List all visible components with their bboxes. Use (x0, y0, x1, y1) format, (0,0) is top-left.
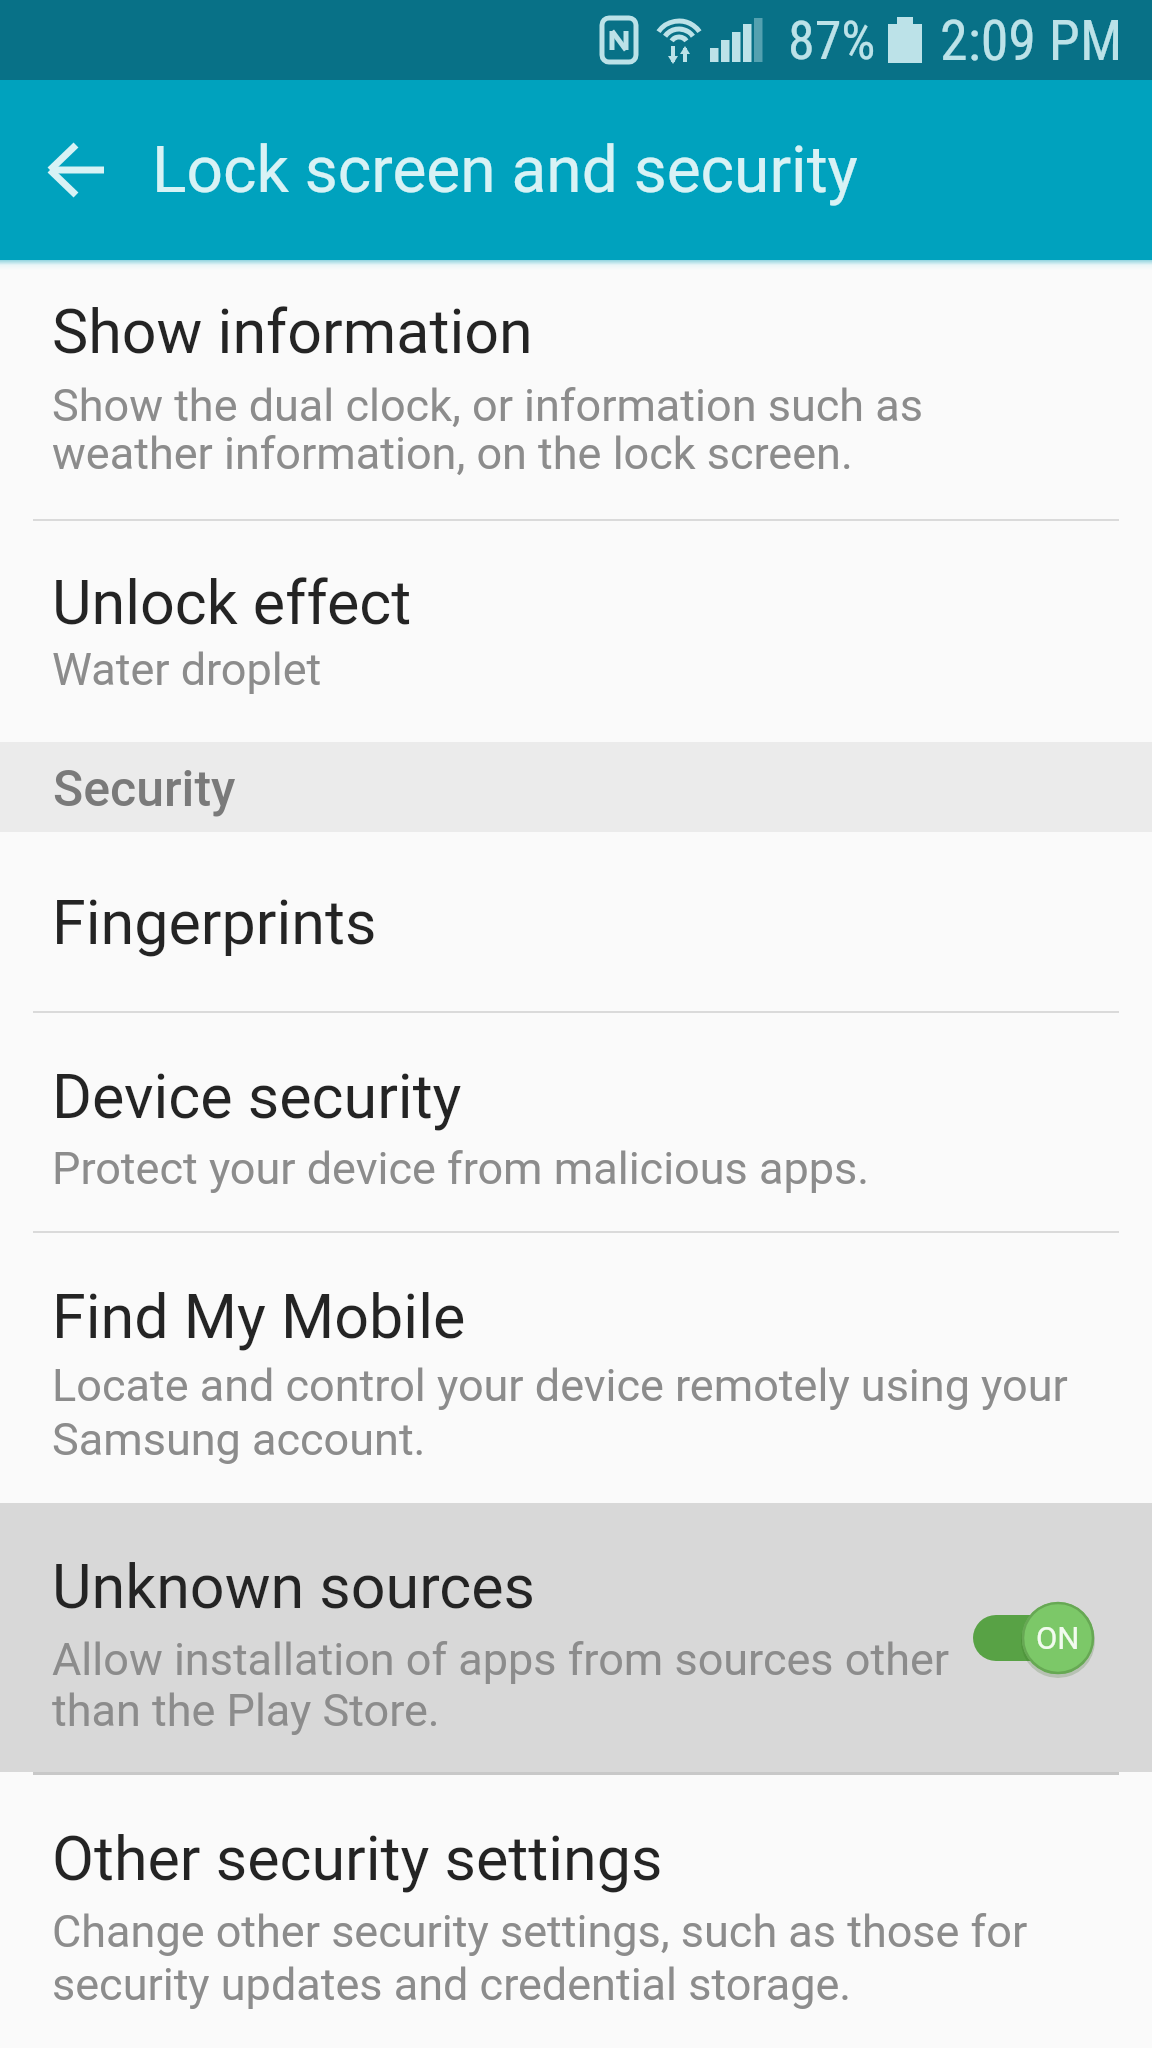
staticText: Unlock effect (52, 567, 412, 638)
button[interactable]: Unlock effect (0, 521, 1152, 744)
button[interactable] (25, 120, 129, 220)
staticText: Allow installation of apps from sources … (52, 1633, 950, 1686)
staticText: Find My Mobile (52, 1281, 466, 1352)
button[interactable]: Show information (0, 262, 1152, 519)
staticText: than the Play Store. (52, 1684, 440, 1737)
staticText: ON (1036, 1620, 1080, 1656)
staticText: Fingerprints (52, 887, 377, 958)
button[interactable] (973, 1615, 1077, 1661)
staticText: Protect your device from malicious apps. (52, 1142, 870, 1195)
staticText: Show the dual clock, or information such… (52, 379, 923, 432)
staticText: security updates and credential storage. (52, 1958, 852, 2011)
staticText: Device security (52, 1061, 462, 1132)
button[interactable]: Fingerprints (0, 828, 1152, 1012)
staticText: 87% (788, 9, 876, 72)
staticText: Lock screen and security (152, 133, 858, 208)
button[interactable]: Device security (0, 1014, 1152, 1232)
button[interactable]: Find My Mobile (0, 1234, 1152, 1502)
staticText: Security (53, 760, 236, 819)
button[interactable]: Unknown sources (0, 1503, 1152, 1772)
staticText: weather information, on the lock screen. (52, 427, 853, 480)
button[interactable]: Other security settings (0, 1775, 1152, 2048)
staticText: Other security settings (52, 1823, 663, 1894)
staticText: Change other security settings, such as … (52, 1905, 1028, 1958)
staticText: Unknown sources (52, 1551, 536, 1622)
staticText: Locate and control your device remotely … (52, 1359, 1068, 1412)
staticText: 2:09 PM (940, 8, 1123, 74)
staticText: Show information (52, 296, 533, 367)
staticText: Samsung account. (52, 1413, 426, 1466)
staticText: Water droplet (52, 643, 322, 696)
